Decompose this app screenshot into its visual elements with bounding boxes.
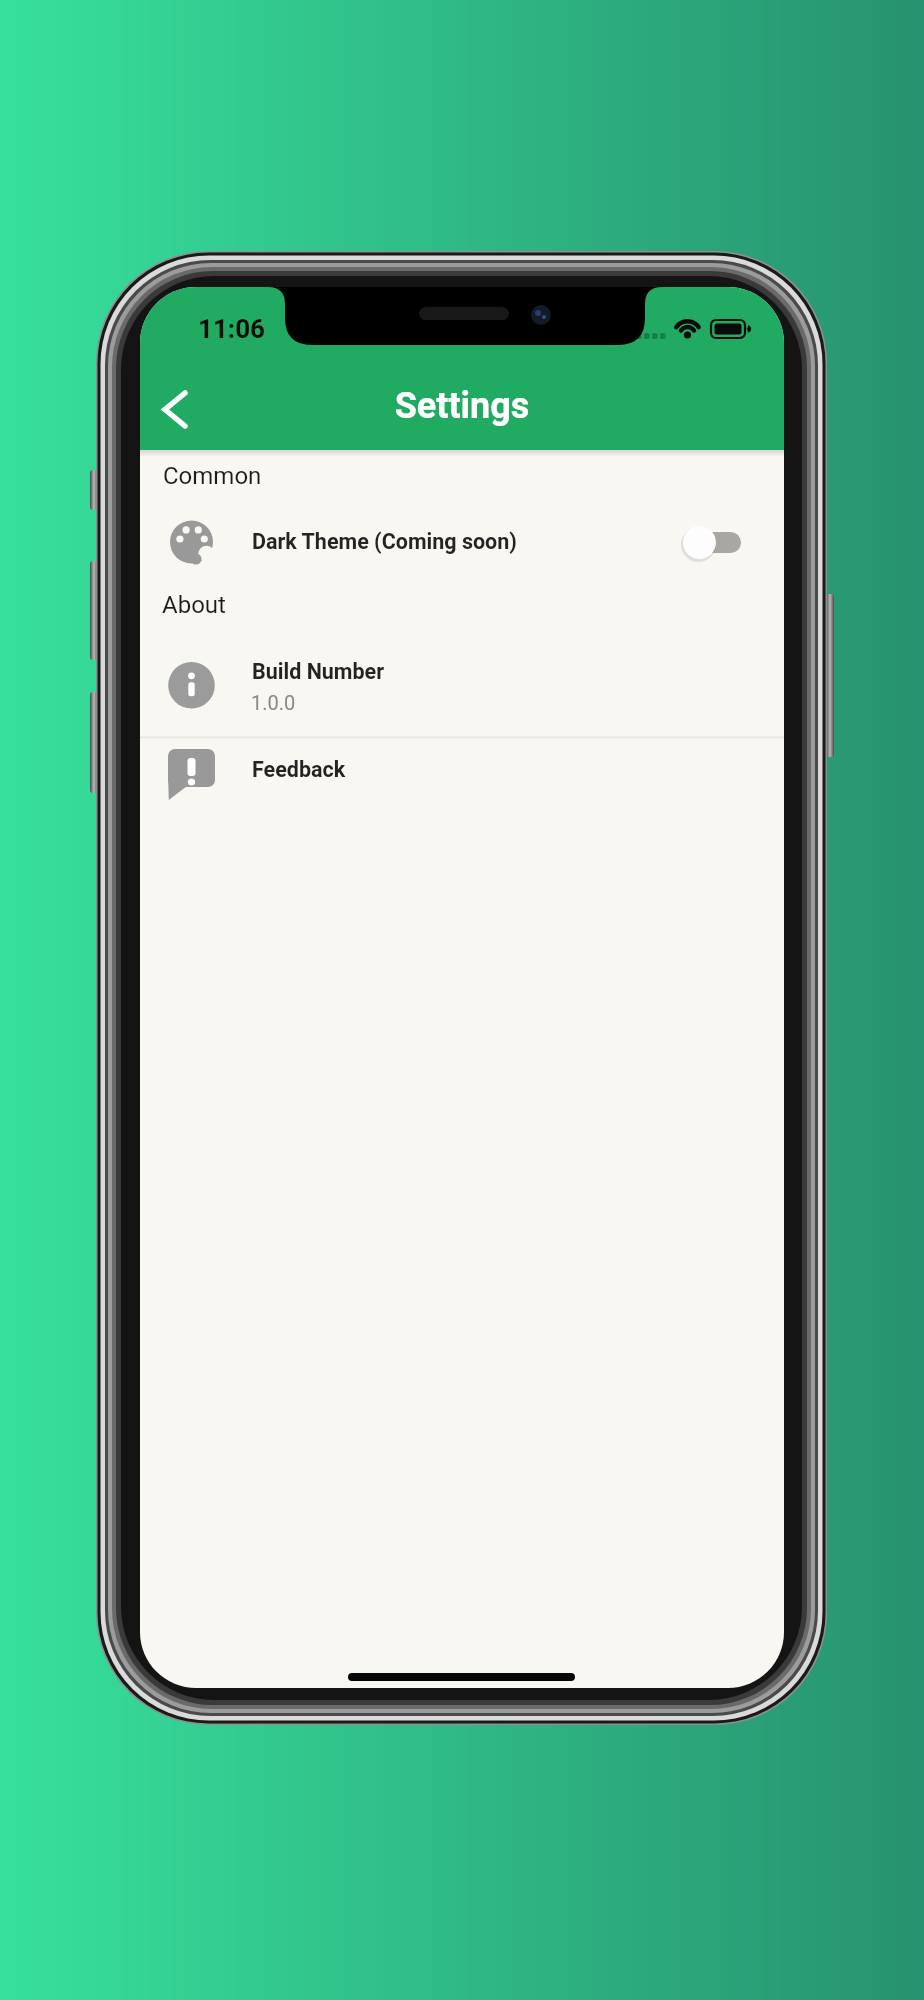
button[interactable]: [150, 382, 205, 437]
staticText: Dark Theme (Coming soon): [252, 529, 732, 554]
button[interactable]: [697, 532, 741, 553]
staticText: Settings: [140, 385, 784, 427]
button[interactable]: [140, 738, 784, 808]
staticText: Common: [163, 462, 463, 490]
staticText: 11:06: [198, 314, 358, 344]
staticText: Build Number: [252, 659, 732, 684]
button[interactable]: [140, 632, 784, 736]
staticText: About: [162, 591, 462, 619]
button[interactable]: [140, 505, 784, 581]
staticText: Feedback: [252, 757, 732, 782]
staticText: 1.0.0: [251, 691, 731, 714]
